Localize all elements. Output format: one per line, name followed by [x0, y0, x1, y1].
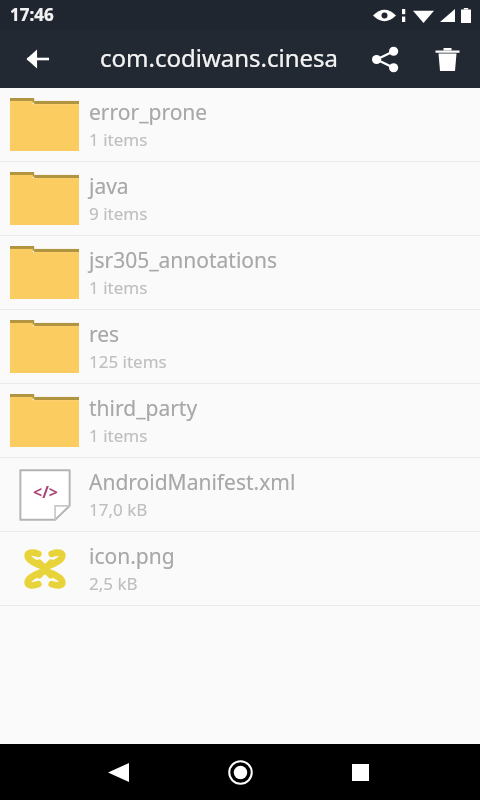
- button[interactable]: third_party: [0, 384, 480, 458]
- staticText: 9 items: [89, 202, 148, 225]
- button[interactable]: jsr305_annotations: [0, 236, 480, 310]
- button[interactable]: java: [0, 162, 480, 236]
- button[interactable]: Back: [94, 748, 142, 796]
- staticText: 2,5 kB: [89, 572, 138, 595]
- button[interactable]: </>: [0, 458, 480, 532]
- staticText: 1 items: [89, 128, 148, 151]
- staticText: </>: [33, 481, 58, 503]
- button[interactable]: Recents: [336, 748, 384, 796]
- button[interactable]: Share: [356, 30, 414, 88]
- staticText: 17,0 kB: [89, 498, 148, 521]
- staticText: 1 items: [89, 276, 148, 299]
- button[interactable]: error_prone: [0, 88, 480, 162]
- button[interactable]: icon.png: [0, 532, 480, 606]
- staticText: 125 items: [89, 350, 167, 373]
- button[interactable]: Back: [0, 30, 76, 88]
- staticText: res: [89, 320, 120, 349]
- staticText: 17:46: [10, 3, 54, 26]
- staticText: error_prone: [89, 98, 208, 127]
- staticText: third_party: [89, 394, 198, 423]
- button[interactable]: Delete: [414, 30, 480, 88]
- button[interactable]: Home: [216, 748, 264, 796]
- staticText: java: [89, 172, 129, 201]
- staticText: icon.png: [89, 542, 175, 571]
- staticText: 1 items: [89, 424, 148, 447]
- staticText: AndroidManifest.xml: [89, 468, 296, 497]
- button[interactable]: res: [0, 310, 480, 384]
- staticText: com.codiwans.cinesa: [100, 41, 339, 74]
- staticText: jsr305_annotations: [89, 246, 278, 275]
